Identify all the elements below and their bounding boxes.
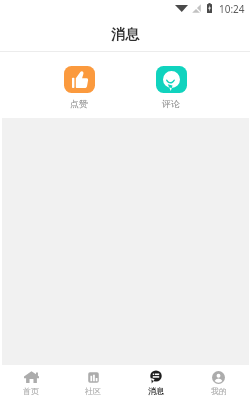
other: Like <box>64 66 95 93</box>
staticText: 10:24 <box>219 2 245 16</box>
staticText: 评论 <box>162 98 180 109</box>
button[interactable]: 首页 <box>0 365 62 400</box>
staticText: 消息 <box>111 26 139 44</box>
staticText: 消息 <box>148 386 164 396</box>
staticText: 首页 <box>23 386 39 396</box>
button[interactable]: Comment <box>150 52 193 109</box>
button[interactable]: 消息 <box>124 365 187 400</box>
staticText: 我的 <box>211 386 227 396</box>
staticText: 点赞 <box>70 98 88 109</box>
other: Comment <box>156 66 187 93</box>
button[interactable]: 社区 <box>62 365 124 400</box>
staticText: 社区 <box>85 386 101 396</box>
button[interactable]: 我的 <box>187 365 250 400</box>
button[interactable]: Like <box>58 52 101 109</box>
